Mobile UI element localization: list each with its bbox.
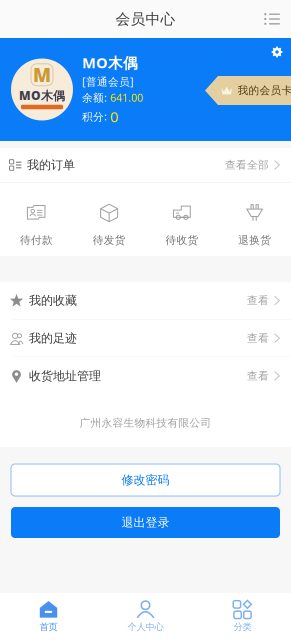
staticText: 待付款: [20, 234, 53, 247]
staticText: 会员中心: [115, 10, 175, 28]
staticText: 我的会员卡: [237, 84, 291, 97]
staticText: 个人中心: [127, 621, 163, 633]
button[interactable]: 我的收藏: [0, 282, 291, 319]
button[interactable]: 分类: [194, 593, 291, 640]
staticText: 分类: [233, 621, 251, 633]
staticText: MO木偶: [82, 53, 138, 72]
button[interactable]: 待付款: [0, 203, 73, 247]
staticText: 待发货: [93, 234, 126, 247]
button[interactable]: 菜单: [253, 3, 291, 35]
button[interactable]: 修改密码: [11, 464, 280, 496]
staticText: 我的收藏: [29, 293, 77, 308]
staticText: 待收货: [165, 234, 198, 247]
button[interactable]: 待收货: [145, 203, 218, 247]
staticText: 我的足迹: [29, 331, 77, 345]
staticText: M: [33, 62, 51, 87]
button[interactable]: 退换货: [218, 203, 291, 247]
staticText: 修改密码: [121, 473, 169, 487]
button[interactable]: 我的足迹: [0, 320, 291, 357]
button[interactable]: 设置: [263, 38, 291, 66]
staticText: 退出登录: [121, 515, 169, 530]
button[interactable]: 收货地址管理: [0, 357, 291, 394]
staticText: 查看: [247, 332, 269, 345]
staticText: 我的订单: [27, 158, 75, 172]
staticText: 收货地址管理: [29, 368, 101, 383]
staticText: 641.00: [110, 90, 143, 105]
button[interactable]: 我的订单: [0, 148, 291, 182]
button[interactable]: 个人中心: [97, 593, 194, 640]
staticText: 广州永容生物科技有限公司: [79, 416, 211, 429]
staticText: 0: [110, 107, 118, 126]
staticText: 查看: [247, 369, 269, 382]
button[interactable]: 首页: [0, 593, 97, 640]
staticText: 积分:: [82, 109, 110, 124]
staticText: [普通会员]: [82, 74, 134, 89]
button[interactable]: 我的会员卡: [205, 76, 291, 105]
staticText: 余额:: [82, 90, 110, 105]
staticText: 退换货: [238, 234, 271, 247]
staticText: 查看: [247, 294, 269, 307]
button[interactable]: 退出登录: [11, 507, 280, 538]
button[interactable]: 待发货: [73, 203, 146, 247]
staticText: 查看全部: [225, 158, 269, 171]
staticText: MO木偶: [19, 87, 65, 103]
staticText: 首页: [39, 621, 57, 633]
